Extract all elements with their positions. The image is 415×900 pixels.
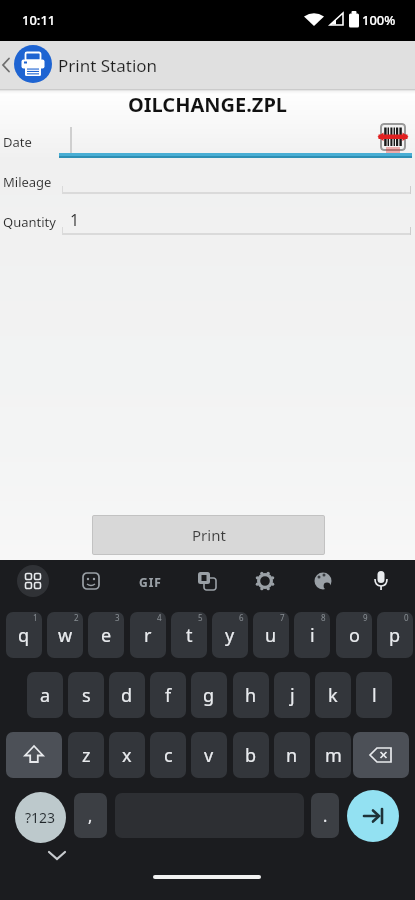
button[interactable]: r (130, 612, 166, 658)
staticText: Print (192, 525, 226, 545)
button[interactable] (17, 565, 49, 597)
staticText: z (82, 743, 91, 768)
staticText: h (245, 683, 257, 708)
button[interactable] (380, 123, 406, 151)
button[interactable]: f (150, 672, 186, 718)
button[interactable]: y (212, 612, 248, 658)
staticText: c (164, 743, 173, 768)
button[interactable]: e (88, 612, 124, 658)
staticText: Mileage (3, 173, 52, 191)
button[interactable]: l (356, 672, 392, 718)
staticText: n (286, 743, 298, 768)
button[interactable]: m (315, 732, 351, 778)
button[interactable]: ?123 (15, 792, 66, 843)
button[interactable] (0, 41, 415, 89)
button[interactable] (236, 565, 268, 597)
button[interactable] (178, 565, 210, 597)
staticText: r (144, 623, 152, 648)
button[interactable]: k (315, 672, 351, 718)
staticText: l (372, 683, 377, 708)
staticText: Print Station (58, 54, 158, 77)
staticText: s (82, 683, 91, 708)
staticText: 6 (239, 612, 244, 623)
staticText: i (310, 623, 315, 648)
staticText: b (245, 743, 257, 768)
staticText: 3 (115, 612, 120, 623)
staticText: w (58, 623, 73, 648)
button[interactable] (6, 732, 62, 778)
staticText: j (290, 683, 295, 708)
button[interactable] (62, 565, 94, 597)
button[interactable]: o (336, 612, 372, 658)
button[interactable]: h (233, 672, 269, 718)
staticText: . (323, 805, 328, 827)
staticText: k (328, 683, 338, 708)
staticText: GIF (139, 574, 162, 590)
button[interactable]: , (74, 793, 107, 838)
staticText: 9 (363, 612, 368, 623)
staticText: u (265, 623, 277, 648)
staticText: t (186, 623, 193, 648)
button[interactable]: Print (92, 515, 325, 555)
staticText: Quantity (3, 213, 56, 231)
button[interactable]: p (377, 612, 413, 658)
button[interactable]: q (6, 612, 42, 658)
staticText: 1 (70, 209, 80, 231)
staticText: o (349, 623, 360, 648)
button[interactable]: d (109, 672, 145, 718)
staticText: 100% (362, 11, 396, 29)
button[interactable] (120, 565, 152, 597)
staticText: OILCHANGE.ZPL (0, 91, 415, 118)
staticText: 4 (157, 612, 162, 623)
button[interactable]: . (311, 793, 339, 838)
button[interactable]: j (274, 672, 310, 718)
button[interactable]: t (171, 612, 207, 658)
button[interactable]: v (191, 732, 227, 778)
button[interactable]: w (47, 612, 83, 658)
staticText: q (18, 623, 30, 648)
staticText: d (121, 683, 133, 708)
button[interactable]: z (68, 732, 104, 778)
button[interactable] (347, 790, 399, 842)
staticText: ?123 (25, 808, 56, 827)
staticText: y (225, 623, 235, 648)
staticText: 1 (33, 612, 38, 623)
staticText: 7 (280, 612, 285, 623)
button[interactable]: s (68, 672, 104, 718)
button[interactable]: a (27, 672, 63, 718)
button[interactable]: n (274, 732, 310, 778)
button[interactable] (14, 45, 52, 83)
button[interactable]: b (233, 732, 269, 778)
button[interactable]: i (294, 612, 330, 658)
button[interactable] (353, 732, 409, 778)
button[interactable] (153, 875, 261, 879)
staticText: x (122, 743, 132, 768)
staticText: Date (3, 133, 32, 151)
button[interactable]: u (253, 612, 289, 658)
button[interactable] (59, 153, 412, 158)
staticText: 2 (74, 612, 79, 623)
staticText: 8 (321, 612, 326, 623)
staticText: e (101, 623, 112, 648)
button[interactable] (294, 565, 326, 597)
staticText: p (389, 623, 401, 648)
staticText: g (203, 683, 215, 708)
staticText: f (165, 683, 172, 708)
staticText: , (88, 805, 93, 827)
button[interactable] (352, 565, 384, 597)
button[interactable]: g (191, 672, 227, 718)
button[interactable]: x (109, 732, 145, 778)
staticText: a (40, 683, 51, 708)
button[interactable]: c (150, 732, 186, 778)
staticText: v (204, 743, 214, 768)
staticText: 5 (198, 612, 203, 623)
staticText: 0 (404, 612, 409, 623)
staticText: m (325, 743, 342, 768)
staticText: 10:11 (22, 11, 56, 29)
